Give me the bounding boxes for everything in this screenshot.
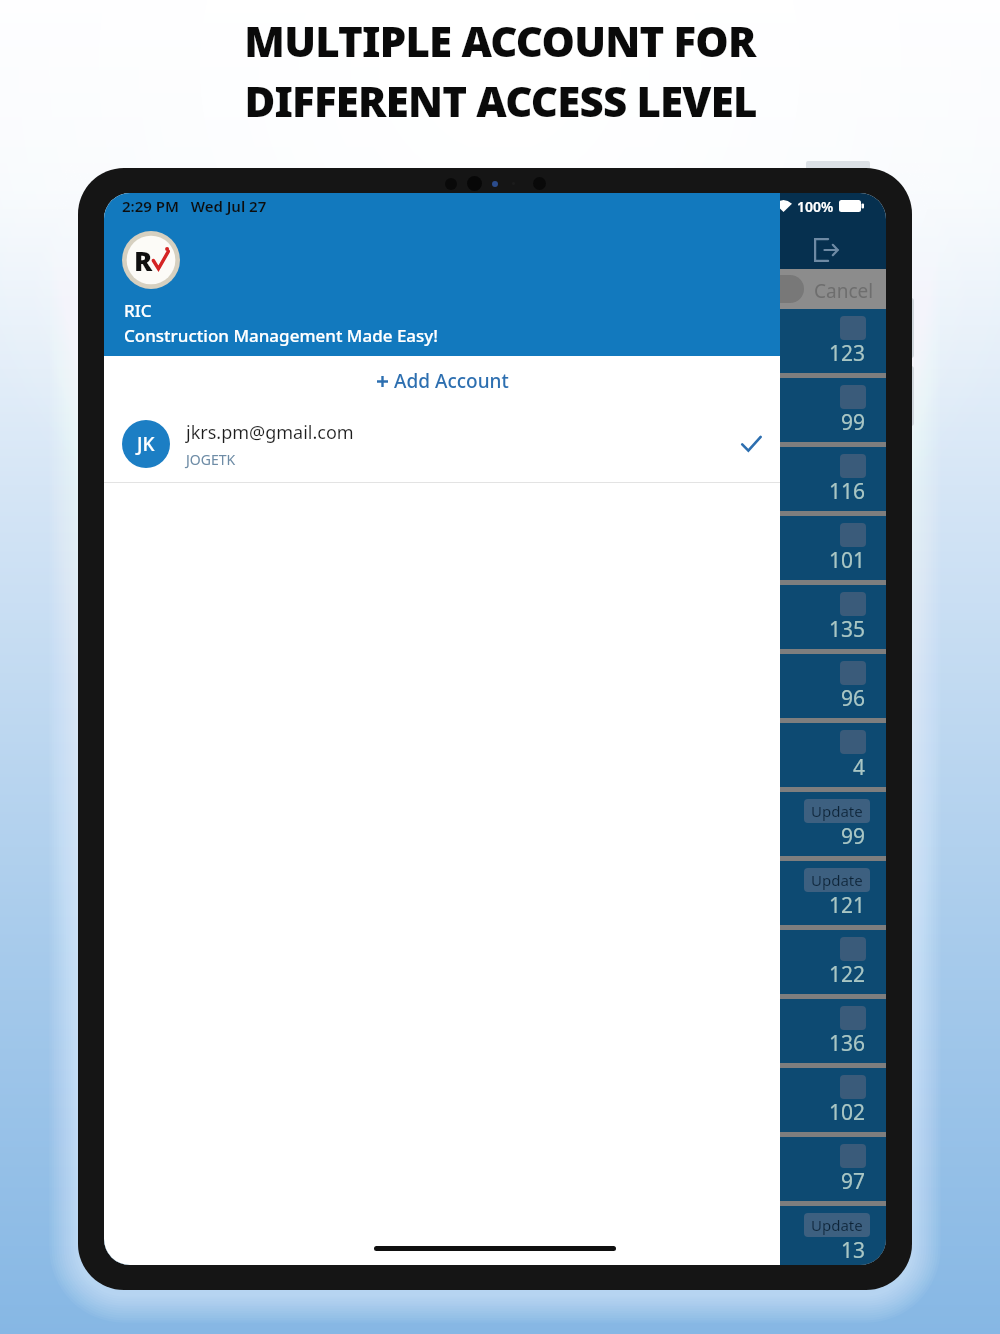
staticText: 100% <box>797 197 834 216</box>
button[interactable]: JK <box>104 406 780 482</box>
staticText: jkrs.pm@gmail.com <box>186 420 354 445</box>
staticText: 116 <box>829 477 866 506</box>
staticText: Add Account <box>394 368 509 394</box>
staticText: 99 <box>841 822 866 851</box>
button[interactable]: Log out <box>802 227 848 273</box>
button[interactable]: 123 <box>104 309 886 373</box>
staticText: 122 <box>829 960 866 989</box>
button[interactable]: Update <box>104 1206 886 1265</box>
button[interactable]: 4 <box>104 723 886 787</box>
button[interactable]: 122 <box>104 930 886 994</box>
staticText: 123 <box>829 339 866 368</box>
staticText: 102 <box>829 1098 866 1127</box>
button[interactable]: 96 <box>104 654 886 718</box>
staticText: 13 <box>841 1236 866 1265</box>
button[interactable]: 99 <box>104 378 886 442</box>
button[interactable]: Update <box>104 792 886 856</box>
staticText: 101 <box>829 546 866 575</box>
button[interactable]: Update <box>104 861 886 925</box>
staticText: R <box>134 242 153 279</box>
button[interactable]: 102 <box>104 1068 886 1132</box>
staticText: JK <box>137 431 155 457</box>
staticText: MULTIPLE ACCOUNT FOR <box>244 12 756 69</box>
staticText: 135 <box>829 615 866 644</box>
button[interactable]: Add Account <box>104 356 780 406</box>
staticText: Cancel <box>814 278 874 304</box>
staticText: JOGETK <box>186 450 236 469</box>
staticText: 4 <box>853 753 866 782</box>
staticText: 97 <box>841 1167 866 1196</box>
staticText: DIFFERENT ACCESS LEVEL <box>244 72 757 129</box>
button[interactable]: 136 <box>104 999 886 1063</box>
staticText: Update <box>811 1215 863 1235</box>
button[interactable]: 97 <box>104 1137 886 1201</box>
staticText: 96 <box>841 684 866 713</box>
staticText: Update <box>811 870 863 890</box>
staticText: 121 <box>829 891 866 920</box>
button[interactable]: 135 <box>104 585 886 649</box>
staticText: RIC <box>124 299 152 322</box>
staticText: 99 <box>841 408 866 437</box>
staticText: Construction Management Made Easy! <box>124 324 438 347</box>
staticText: Update <box>811 801 863 821</box>
staticText: 136 <box>829 1029 866 1058</box>
button[interactable]: 116 <box>104 447 886 511</box>
button[interactable]: 101 <box>104 516 886 580</box>
staticText: 2:29 PM Wed Jul 27 <box>122 196 267 216</box>
